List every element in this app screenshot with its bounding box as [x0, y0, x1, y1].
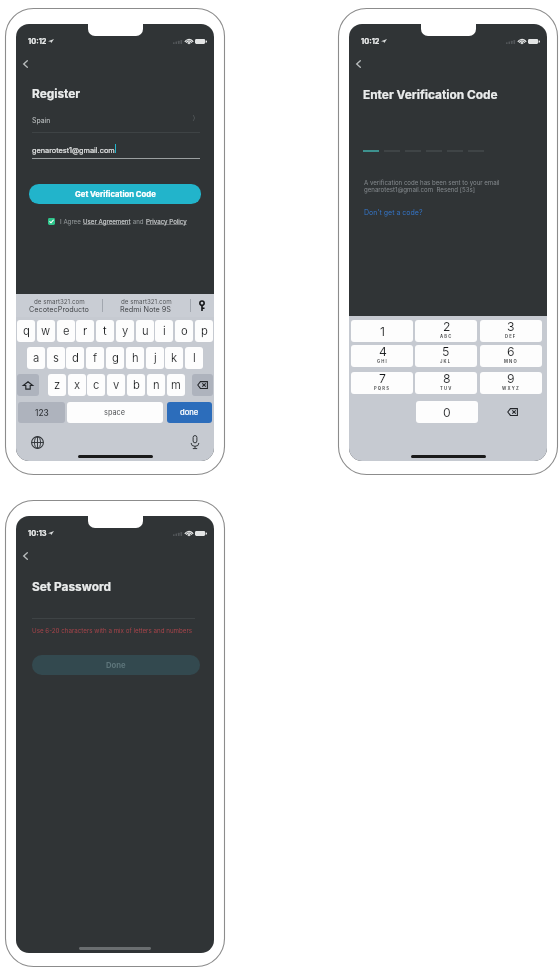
button[interactable]: Don't get a code?	[364, 206, 423, 215]
button[interactable]: s	[47, 347, 65, 369]
staticText: Enter Verification Code	[363, 87, 498, 101]
button[interactable]: space	[67, 402, 163, 423]
staticText: 2	[443, 320, 451, 334]
button[interactable]: g	[106, 347, 124, 369]
staticText: Redmi Note 9S	[120, 305, 172, 314]
button[interactable]: d	[66, 347, 84, 369]
staticText: JKL	[440, 359, 452, 364]
button[interactable]: x	[68, 374, 86, 396]
button[interactable]: 1	[351, 320, 413, 342]
staticText: Done	[106, 661, 126, 670]
button[interactable]	[48, 218, 55, 225]
button[interactable]: o	[175, 320, 193, 342]
button[interactable]: Backspace	[481, 401, 543, 423]
button[interactable]: h	[126, 347, 144, 369]
staticText: de smart321.com	[121, 298, 172, 306]
staticText: 6	[507, 345, 515, 359]
staticText: 1	[380, 324, 385, 339]
staticText: I Agree	[60, 218, 83, 225]
staticText: u	[142, 324, 149, 338]
staticText: d	[72, 351, 79, 365]
staticText: 10:13	[28, 529, 47, 538]
staticText: i	[163, 324, 166, 338]
staticText: and	[131, 218, 146, 225]
button[interactable]: t	[96, 320, 114, 342]
staticText: 4	[379, 345, 387, 359]
staticText: GHI	[377, 359, 388, 364]
button[interactable]: Back	[349, 55, 367, 73]
staticText: o	[181, 324, 188, 338]
staticText: r	[83, 324, 88, 338]
button[interactable]: 8	[415, 372, 477, 394]
button[interactable]: u	[136, 320, 154, 342]
staticText: Use 6-20 characters with a mix of letter…	[32, 627, 193, 635]
staticText: t	[103, 324, 107, 338]
button[interactable]: y	[116, 320, 134, 342]
button[interactable]: k	[165, 347, 183, 369]
button[interactable]: l	[185, 347, 203, 369]
button[interactable]: 7	[351, 372, 413, 394]
button[interactable]: Dictation	[186, 433, 204, 451]
button[interactable]: Saved passwords	[191, 294, 213, 317]
button[interactable]: b	[127, 374, 145, 396]
button[interactable]: 0	[416, 401, 478, 423]
button[interactable]: 123	[18, 402, 65, 423]
staticText: s	[53, 351, 59, 365]
staticText: done	[180, 408, 199, 417]
staticText: A verification code has been sent to you…	[364, 179, 500, 193]
button[interactable]: Back	[16, 547, 34, 565]
button[interactable]: de smart321.com	[103, 294, 190, 317]
staticText: l	[193, 351, 196, 365]
button[interactable]: User Agreement	[83, 218, 131, 225]
button[interactable]: r	[76, 320, 94, 342]
staticText: Get Verification Code	[75, 190, 156, 199]
staticText: 10:12	[28, 37, 47, 46]
button[interactable]: a	[27, 347, 45, 369]
button[interactable]: v	[107, 374, 125, 396]
button[interactable]: de smart321.com	[16, 294, 102, 317]
button[interactable]: w	[37, 320, 55, 342]
button[interactable]: m	[167, 374, 185, 396]
staticText: Set Password	[32, 579, 111, 593]
button[interactable]: c	[87, 374, 105, 396]
button[interactable]: p	[195, 320, 213, 342]
button[interactable]: Back	[16, 55, 34, 73]
button[interactable]: 5	[415, 345, 477, 367]
staticText: w	[41, 324, 51, 338]
button[interactable]: j	[146, 347, 164, 369]
button[interactable]: i	[155, 320, 173, 342]
button[interactable]: Done	[32, 655, 200, 675]
button[interactable]: Get Verification Code	[29, 184, 201, 204]
staticText: CecotecProducto	[29, 305, 89, 314]
staticText: PQRS	[374, 386, 391, 391]
button[interactable]: 4	[351, 345, 413, 367]
staticText: p	[201, 324, 208, 338]
button[interactable]: done	[167, 402, 212, 423]
staticText: 0	[443, 405, 451, 420]
button[interactable]: q	[17, 320, 35, 342]
staticText: 123	[35, 408, 49, 418]
button[interactable]: z	[48, 374, 66, 396]
button[interactable]: 2	[415, 320, 477, 342]
staticText: Register	[32, 87, 81, 101]
button[interactable]: Shift	[17, 374, 39, 396]
button[interactable]: 6	[480, 345, 542, 367]
button[interactable]: f	[86, 347, 104, 369]
staticText: f	[93, 351, 98, 365]
button[interactable]: Change keyboard	[28, 433, 46, 451]
staticText: e	[63, 324, 70, 338]
staticText: space	[104, 408, 126, 417]
button[interactable]: 3	[480, 320, 542, 342]
button[interactable]: 9	[480, 372, 542, 394]
staticText: 5	[442, 345, 450, 359]
staticText: 7	[379, 372, 386, 386]
staticText: 3	[507, 320, 515, 334]
button[interactable]: Privacy Policy	[146, 218, 187, 225]
button[interactable]: Spain	[16, 110, 214, 127]
staticText: de smart321.com	[34, 298, 85, 306]
staticText: TUV	[440, 386, 453, 391]
button[interactable]: e	[57, 320, 75, 342]
staticText: b	[133, 378, 140, 392]
button[interactable]: Backspace	[192, 374, 213, 396]
button[interactable]: n	[147, 374, 165, 396]
